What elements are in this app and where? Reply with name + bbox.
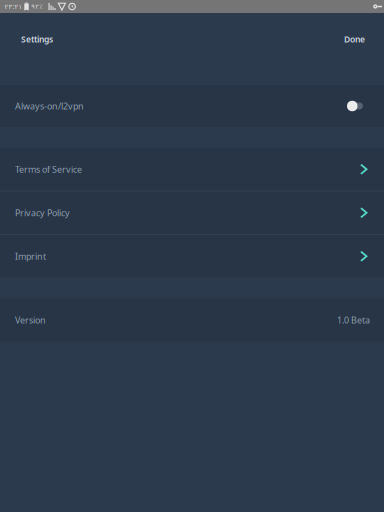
- staticText: Terms of Service: [15, 163, 82, 175]
- button[interactable]: Always-on/l2vpn: [0, 85, 384, 127]
- staticText: Done: [344, 33, 365, 45]
- staticText: Privacy Policy: [15, 207, 70, 219]
- button[interactable]: Privacy Policy: [0, 191, 384, 234]
- staticText: ٩٢٪: [31, 3, 43, 10]
- button[interactable]: Terms of Service: [0, 148, 384, 190]
- staticText: Settings: [21, 33, 53, 45]
- staticText: Version: [15, 314, 46, 326]
- button[interactable]: Done: [344, 33, 365, 45]
- staticText: ٢٣:٢١: [4, 2, 22, 11]
- button[interactable]: Imprint: [0, 235, 384, 277]
- staticText: Imprint: [15, 250, 46, 262]
- staticText: 1.0 Beta: [337, 314, 370, 326]
- staticText: Always-on/l2vpn: [15, 100, 84, 112]
